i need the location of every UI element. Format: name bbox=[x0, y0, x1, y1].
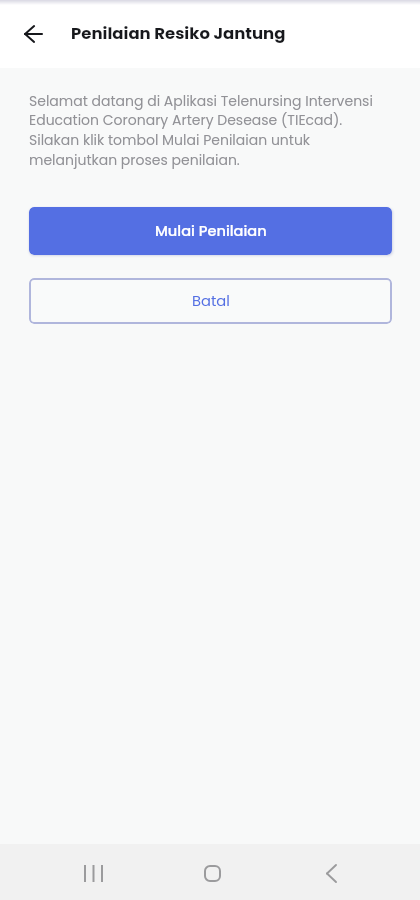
staticText: Penilaian Resiko Jantung bbox=[71, 22, 286, 45]
button[interactable]: Home bbox=[188, 849, 236, 897]
button[interactable]: Back bbox=[307, 849, 355, 897]
staticText: Selamat datang di Aplikasi Telenursing I… bbox=[29, 91, 376, 170]
staticText: Batal bbox=[192, 291, 230, 312]
button[interactable]: Batal bbox=[29, 278, 392, 324]
button[interactable]: Back bbox=[15, 15, 52, 52]
button[interactable]: Mulai Penilaian bbox=[29, 207, 392, 255]
staticText: Mulai Penilaian bbox=[155, 221, 267, 241]
button[interactable]: Recent apps bbox=[69, 849, 117, 897]
